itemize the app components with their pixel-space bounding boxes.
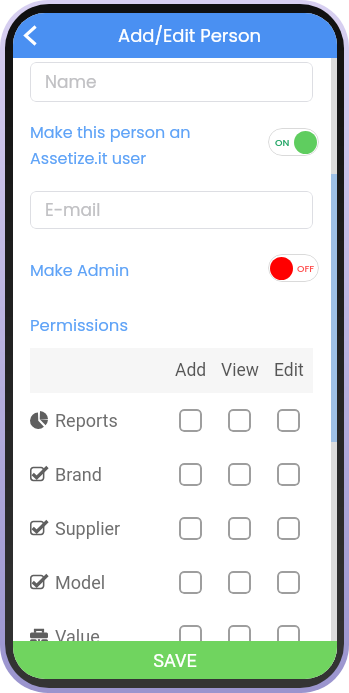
staticText: Reports (55, 410, 166, 431)
button[interactable]: Permission checkbox (179, 517, 202, 540)
button[interactable]: E-mail (30, 191, 313, 229)
button[interactable]: Make admin, off (268, 254, 319, 282)
staticText: Edit (274, 360, 304, 381)
button[interactable]: Permission checkbox (277, 625, 300, 648)
button[interactable]: Permission checkbox (277, 463, 300, 486)
button[interactable]: Permission checkbox (228, 517, 251, 540)
button[interactable]: Permission checkbox (179, 571, 202, 594)
staticText: E-mail (45, 198, 101, 222)
button[interactable]: Permission checkbox (277, 409, 300, 432)
staticText: Supplier (55, 518, 166, 539)
staticText: View (221, 360, 259, 381)
staticText: Make this person an Assetize.it user (30, 121, 191, 169)
staticText: Brand (55, 464, 166, 485)
button[interactable]: Permission checkbox (179, 463, 202, 486)
button[interactable]: Permission checkbox (228, 409, 251, 432)
button[interactable]: SAVE (13, 641, 337, 679)
staticText: Add (175, 360, 207, 381)
staticText: ON (275, 136, 290, 149)
button[interactable]: Permission checkbox (277, 571, 300, 594)
button[interactable]: Permission checkbox (179, 409, 202, 432)
staticText: Make Admin (30, 259, 130, 281)
button[interactable]: Permission checkbox (228, 625, 251, 648)
button[interactable]: Permission checkbox (228, 463, 251, 486)
staticText: Permissions (30, 314, 129, 337)
staticText: Model (55, 572, 166, 593)
button[interactable]: Assetize user, on (268, 128, 319, 156)
staticText: Add/Edit Person (118, 23, 261, 48)
button[interactable]: Permission checkbox (277, 517, 300, 540)
staticText: SAVE (153, 650, 197, 671)
button[interactable]: Back (17, 22, 43, 48)
button[interactable]: Permission checkbox (228, 571, 251, 594)
staticText: OFF (297, 262, 315, 275)
staticText: Name (45, 70, 97, 94)
button[interactable]: Name (30, 62, 313, 102)
staticText: Value (55, 626, 166, 647)
button[interactable]: Permission checkbox (179, 625, 202, 648)
